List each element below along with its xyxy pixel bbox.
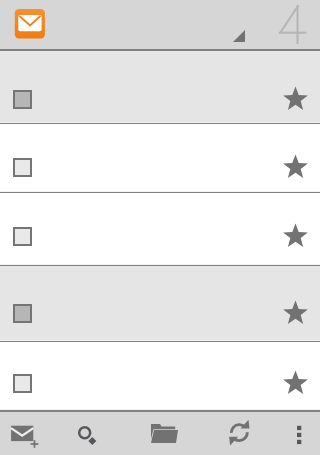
button[interactable]: More options — [277, 410, 320, 455]
button[interactable]: Compose — [0, 410, 45, 455]
button[interactable] — [0, 266, 320, 341]
button[interactable]: Star message — [282, 154, 309, 181]
button[interactable]: Star message — [282, 300, 309, 327]
button[interactable]: Email — [14, 8, 45, 39]
button[interactable] — [0, 51, 320, 123]
button[interactable]: Star message — [282, 370, 309, 397]
button[interactable]: Folders — [142, 410, 187, 455]
button[interactable] — [0, 193, 320, 265]
button[interactable] — [0, 342, 320, 410]
button[interactable]: Refresh — [217, 410, 262, 455]
button[interactable] — [0, 124, 320, 192]
button[interactable]: Search — [63, 410, 108, 455]
button[interactable]: Star message — [282, 86, 309, 113]
button[interactable]: Star message — [282, 223, 309, 250]
